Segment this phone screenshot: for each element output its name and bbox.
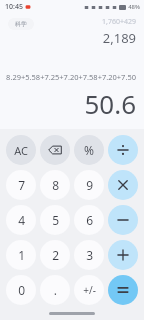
staticText: 2,189 [102, 29, 136, 47]
button[interactable]: +/- [74, 275, 104, 305]
staticText: 科学 [15, 20, 27, 28]
staticText: 5 [52, 212, 59, 228]
button[interactable]: Minus [108, 205, 138, 235]
staticText: 48% [128, 3, 140, 11]
staticText: 4 [18, 212, 25, 228]
staticText: 8 [52, 177, 59, 193]
button[interactable]: 1 [6, 240, 36, 270]
button[interactable]: 6 [74, 205, 104, 235]
staticText: +/- [83, 283, 96, 297]
staticText: 6 [86, 212, 93, 228]
button[interactable]: 7 [6, 170, 36, 200]
button[interactable]: Plus [108, 240, 138, 270]
button[interactable]: Scientific mode [8, 18, 34, 30]
staticText: 50.6 [84, 86, 136, 121]
button[interactable]: 3 [74, 240, 104, 270]
button[interactable]: . [40, 275, 70, 305]
button[interactable]: 9 [74, 170, 104, 200]
button[interactable]: Divide [108, 135, 138, 165]
staticText: 2 [52, 247, 59, 263]
staticText: AC [14, 143, 28, 158]
button[interactable]: 2 [40, 240, 70, 270]
button[interactable]: AC [6, 135, 36, 165]
staticText: 1,760+429 [102, 17, 136, 27]
button[interactable]: % [74, 135, 104, 165]
staticText: 7 [18, 177, 25, 193]
button[interactable]: 8 [40, 170, 70, 200]
button[interactable]: 4 [6, 205, 36, 235]
staticText: % [84, 142, 94, 158]
staticText: 8.29+5.58+7.25+7.20+7.58+7.20+7.50 [6, 72, 136, 82]
button[interactable]: 0 [6, 275, 36, 305]
button[interactable]: Backspace [40, 135, 70, 165]
button[interactable]: Multiply [108, 170, 138, 200]
button[interactable]: Equals [108, 275, 138, 305]
staticText: 0 [18, 282, 25, 298]
staticText: 10:45 [5, 2, 23, 12]
staticText: 3 [86, 247, 93, 263]
staticText: 9 [86, 177, 93, 193]
button[interactable]: 5 [40, 205, 70, 235]
staticText: . [53, 282, 57, 298]
staticText: 1 [18, 247, 25, 263]
